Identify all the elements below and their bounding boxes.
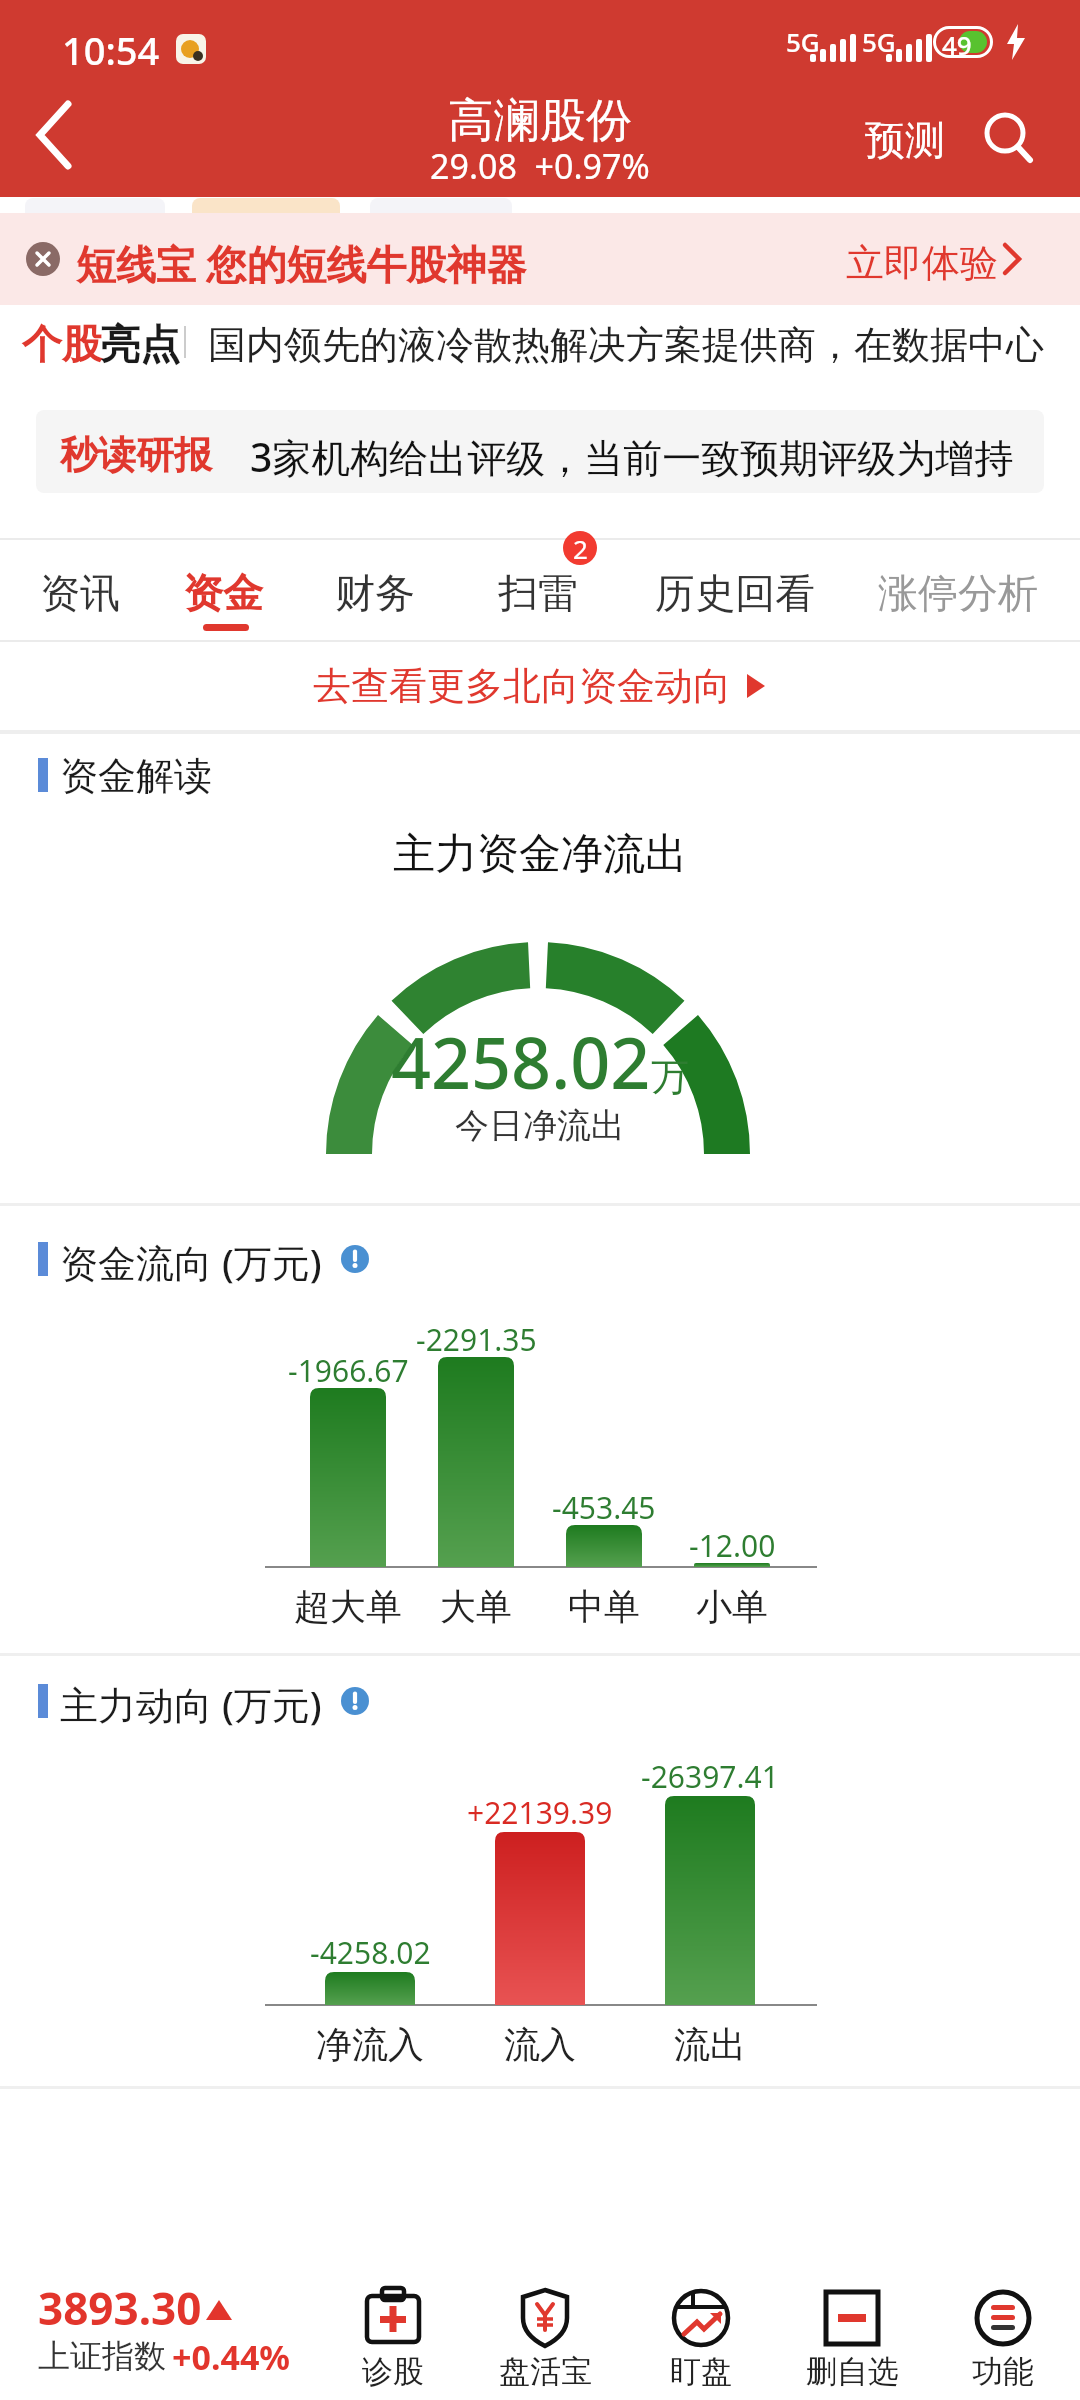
staticText: 资讯 (40, 568, 120, 618)
staticText: 资金流向 (万元) (60, 1236, 322, 1288)
staticText: 29.08 +0.97% (430, 143, 650, 189)
staticText: 上证指数 (38, 2336, 166, 2376)
staticText: 5G (862, 24, 896, 59)
staticText: 个股 (22, 319, 102, 369)
staticText: 3893.30 (38, 2278, 202, 2338)
staticText: 短线宝 您的短线牛股神器 (76, 236, 527, 291)
staticText: -4258.02 (310, 1932, 431, 1973)
staticText: 2 (573, 531, 588, 565)
staticText: 超大单 (294, 1584, 402, 1629)
button[interactable]: 历史回看 (645, 540, 835, 640)
staticText: 功能 (972, 2352, 1034, 2391)
staticText: 小单 (696, 1584, 768, 1629)
staticText: 扫雷 (498, 568, 578, 618)
button[interactable]: 诊股 (323, 2280, 463, 2400)
button[interactable]: 秒读研报 (36, 410, 1044, 493)
staticText: 盘活宝 (499, 2352, 592, 2391)
staticText: 净流入 (316, 2022, 424, 2067)
button[interactable]: 资金 (173, 540, 283, 640)
staticText: 盯盘 (670, 2352, 732, 2391)
staticText: 历史回看 (655, 568, 815, 618)
button[interactable] (975, 105, 1045, 175)
staticText: 10:54 (62, 24, 160, 76)
button[interactable]: 资讯 (30, 540, 140, 640)
staticText: 立即体验 (846, 239, 998, 287)
button[interactable]: 删自选 (782, 2280, 922, 2400)
staticText: 秒读研报 (60, 431, 212, 479)
staticText: 国内领先的液冷散热解决方案提供商，在数据中心液冷领… (208, 321, 1058, 369)
staticText: 主力资金净流出 (393, 828, 687, 881)
button[interactable]: 扫雷 (488, 540, 598, 640)
staticText: 涨停分析 (878, 568, 1038, 618)
button[interactable]: 财务 (325, 540, 435, 640)
staticText: -2291.35 (416, 1319, 537, 1360)
staticText: -26397.41 (641, 1756, 779, 1797)
staticText: 今日净流出 (455, 1104, 625, 1147)
staticText: 大单 (440, 1584, 512, 1629)
staticText: 诊股 (362, 2352, 424, 2391)
staticText: 流出 (674, 2022, 746, 2067)
staticText: 预测 (865, 115, 945, 165)
staticText: 高澜股份 (448, 92, 632, 150)
staticText: 资金 (183, 568, 263, 618)
staticText: -1966.67 (288, 1350, 409, 1391)
button[interactable]: 涨停分析 (868, 540, 1058, 640)
staticText: 中单 (568, 1584, 640, 1629)
button[interactable]: 盘活宝 (475, 2280, 615, 2400)
staticText: +22139.39 (467, 1792, 613, 1833)
staticText: +0.44% (172, 2334, 291, 2380)
button[interactable]: 预测 (850, 105, 960, 175)
staticText: 4258.02 (391, 1014, 651, 1109)
staticText: 资金解读 (60, 752, 212, 800)
button[interactable]: 盯盘 (631, 2280, 771, 2400)
staticText: 万 (651, 1053, 689, 1101)
staticText: 去查看更多北向资金动向 (313, 662, 731, 710)
staticText: 删自选 (806, 2352, 899, 2391)
staticText: 亮点 (100, 319, 180, 369)
staticText: 49 (942, 27, 972, 62)
button[interactable]: 3893.30 (0, 2262, 300, 2400)
button[interactable]: 去查看更多北向资金动向 (0, 642, 1080, 730)
staticText: -453.45 (552, 1487, 656, 1528)
button[interactable]: 功能 (933, 2280, 1073, 2400)
staticText: 3家机构给出评级，当前一致预期评级为增持 (250, 430, 1014, 483)
button[interactable]: 短线宝 您的短线牛股神器 (0, 213, 1080, 305)
staticText: 主力动向 (万元) (60, 1678, 322, 1730)
staticText: 5G (786, 24, 820, 59)
button[interactable]: 个股 (0, 305, 1080, 377)
staticText: 流入 (504, 2022, 576, 2067)
button[interactable] (20, 90, 90, 180)
staticText: 财务 (335, 568, 415, 618)
staticText: -12.00 (689, 1525, 776, 1566)
